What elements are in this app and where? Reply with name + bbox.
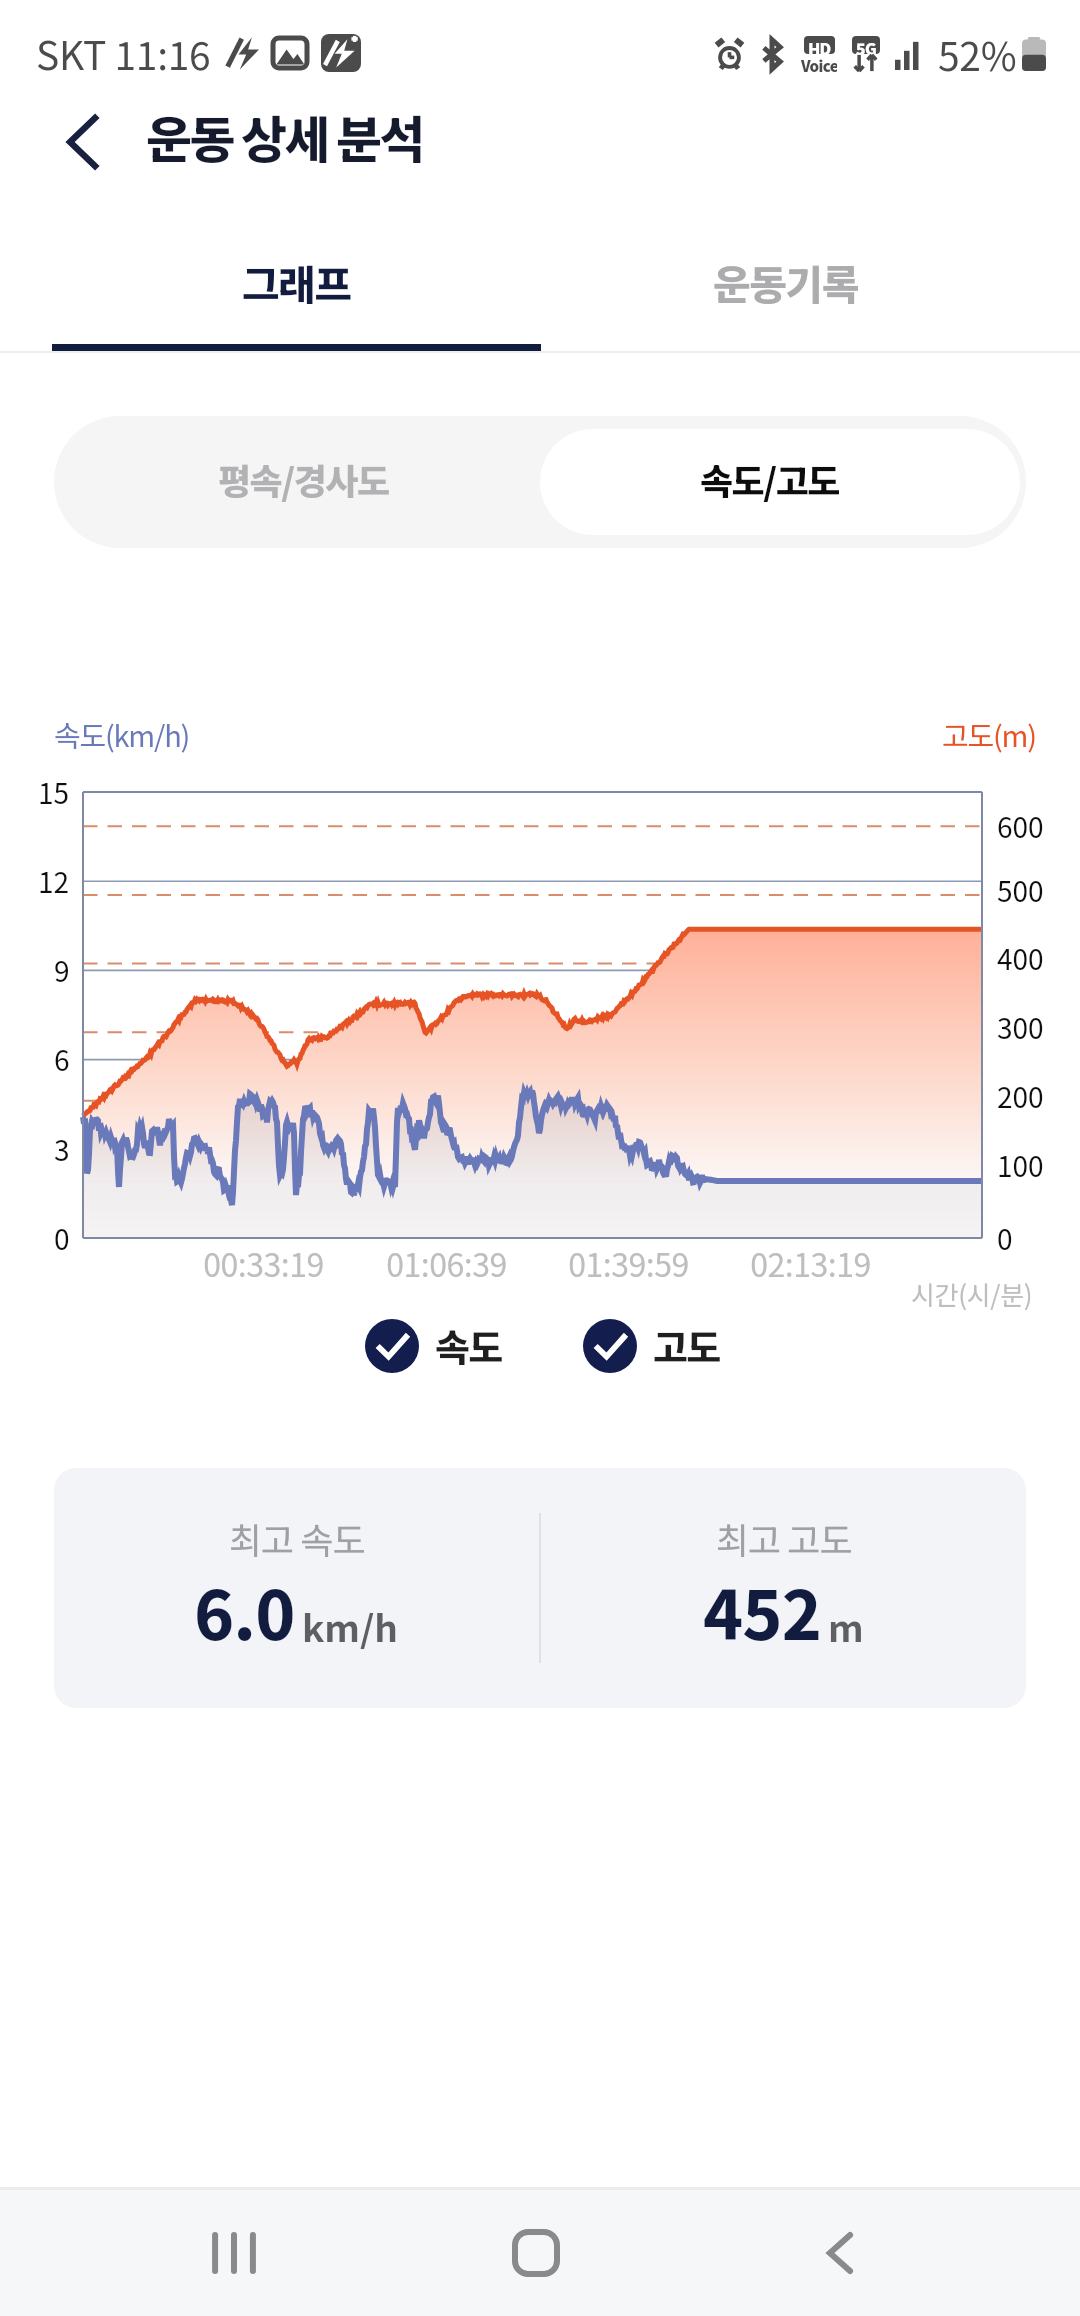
staticText: 452 [703,1562,821,1659]
staticText: 고도(m) [942,713,1036,755]
staticText: 15 [38,772,70,813]
staticText: 6.0 [194,1562,295,1659]
button[interactable]: 그래프 [52,190,541,348]
staticText: 그래프 [242,252,351,311]
staticText: km/h [302,1599,399,1653]
staticText: 100 [997,1145,1044,1186]
button[interactable]: Home [476,2190,596,2316]
staticText: 600 [997,806,1044,847]
staticText: 0 [54,1218,70,1259]
staticText: 200 [997,1076,1044,1117]
staticText: 01:06:39 [386,1240,507,1286]
staticText: SKT 11:16 [36,25,211,81]
staticText: 속도(km/h) [54,713,190,755]
staticText: 01:39:59 [568,1240,689,1286]
staticText: 02:13:19 [750,1240,871,1286]
staticText: 속도 [435,1318,502,1373]
staticText: Voice [801,55,837,72]
staticText: 속도/고도 [700,453,839,505]
staticText: 평속/경사도 [218,453,389,505]
staticText: 500 [997,870,1044,911]
staticText: 6 [54,1039,70,1080]
button[interactable]: 속도/고도 [540,429,1020,535]
staticText: 최고 속도 [229,1512,365,1564]
staticText: 12 [38,861,70,902]
staticText: HD [808,36,831,54]
staticText: 시간(시/분) [911,1275,1033,1313]
staticText: 00:33:19 [203,1240,324,1286]
button[interactable]: Recent apps [174,2190,294,2316]
staticText: 5G [856,36,876,54]
button[interactable]: Back [780,2190,900,2316]
button[interactable]: 평속/경사도 [54,416,540,548]
staticText: 300 [997,1007,1044,1048]
staticText: 최고 고도 [716,1512,852,1564]
button[interactable]: 최고 고도 [541,1468,1026,1708]
staticText: 3 [54,1129,70,1170]
staticText: 9 [54,950,70,991]
staticText: 고도 [653,1318,720,1373]
staticText: 0 [997,1218,1013,1259]
button[interactable]: 최고 속도 [54,1468,539,1708]
staticText: 400 [997,938,1044,979]
button[interactable]: Back [35,96,131,188]
staticText: 52% [938,26,1017,82]
staticText: 운동 상세 분석 [146,100,423,172]
staticText: m [828,1599,864,1653]
button[interactable]: 속도 [365,1318,502,1373]
button[interactable]: 운동기록 [541,190,1030,348]
button[interactable]: 고도 [583,1318,720,1373]
staticText: 운동기록 [713,252,858,311]
